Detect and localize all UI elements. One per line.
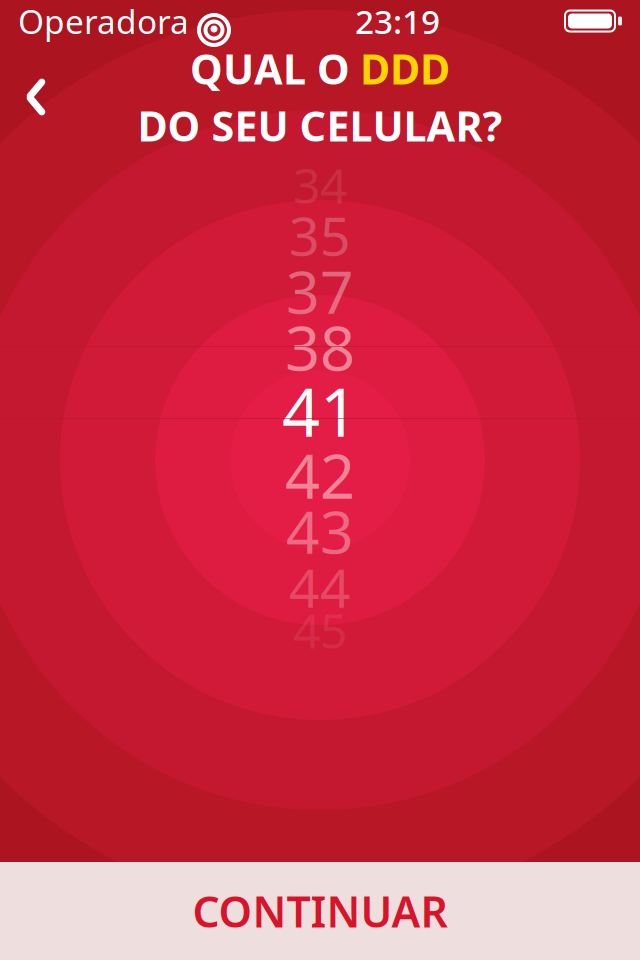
staticText: 37 xyxy=(286,252,354,330)
staticText: DDD xyxy=(360,41,450,96)
staticText: 34 xyxy=(293,153,347,217)
staticText: 38 xyxy=(285,306,355,388)
staticText: 42 xyxy=(285,434,355,516)
button[interactable]: CONTINUAR xyxy=(0,862,640,960)
staticText: 44 xyxy=(289,552,351,622)
staticText: DO SEU CELULAR? xyxy=(137,98,502,153)
button[interactable]: Back xyxy=(6,65,66,129)
staticText: CONTINUAR xyxy=(192,883,447,939)
staticText: 41 xyxy=(282,367,358,455)
staticText: 43 xyxy=(286,492,354,570)
staticText: 23:19 xyxy=(355,0,440,43)
staticText: Operadora xyxy=(18,0,189,43)
staticText: 35 xyxy=(289,200,351,270)
staticText: 45 xyxy=(293,598,347,662)
staticText: QUAL O xyxy=(190,41,350,96)
